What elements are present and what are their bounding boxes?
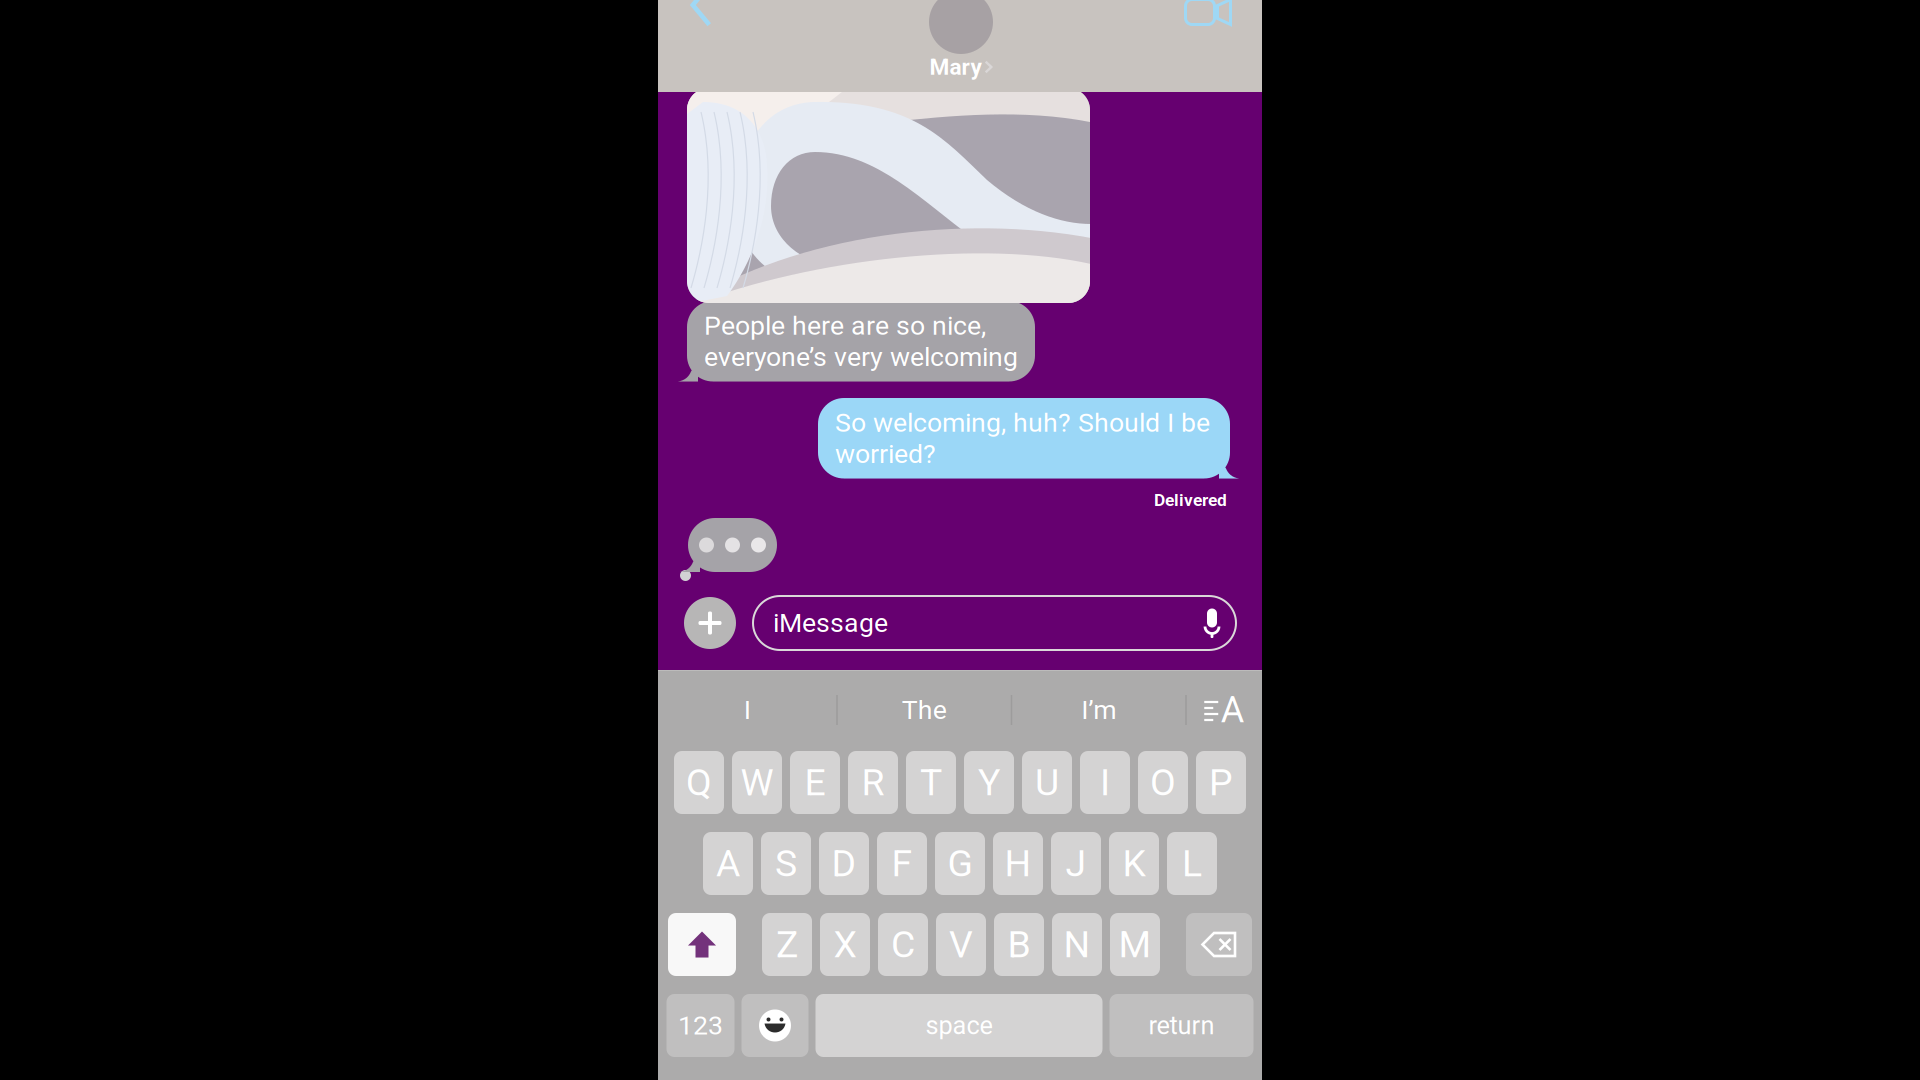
staticText: return (1148, 1011, 1214, 1040)
button[interactable]: O (1138, 751, 1188, 814)
button[interactable]: G (935, 832, 985, 895)
staticText: People here are so nice, everyone’s very… (704, 310, 1018, 372)
staticText: Y (978, 761, 1000, 804)
button[interactable]: J (1051, 832, 1101, 895)
staticText: E (804, 761, 825, 804)
staticText: So welcoming, huh? Should I be worried? (835, 407, 1210, 469)
button[interactable]: X (820, 913, 870, 976)
staticText: F (891, 842, 912, 885)
staticText: I (1100, 761, 1110, 804)
button[interactable]: V (936, 913, 986, 976)
staticText: H (1004, 842, 1031, 885)
button[interactable]: S (761, 832, 811, 895)
staticText: L (1182, 842, 1202, 885)
staticText: Q (686, 761, 712, 804)
staticText: N (1063, 923, 1090, 966)
button[interactable]: Text formatting (1187, 671, 1262, 749)
button[interactable]: Z (762, 913, 812, 976)
button[interactable]: A (703, 832, 753, 895)
button[interactable]: Mary (886, 0, 1036, 78)
button[interactable]: H (993, 832, 1043, 895)
button[interactable]: P (1196, 751, 1246, 814)
button[interactable]: space (815, 994, 1102, 1057)
staticText: T (920, 761, 942, 804)
staticText: Delivered (1154, 490, 1227, 510)
button[interactable]: I (1080, 751, 1130, 814)
button[interactable]: K (1109, 832, 1159, 895)
button[interactable]: C (878, 913, 928, 976)
staticText: K (1122, 842, 1145, 885)
staticText: S (775, 842, 797, 885)
button[interactable]: L (1167, 832, 1217, 895)
staticText: I’m (1081, 694, 1116, 726)
button[interactable]: FaceTime (1182, 0, 1238, 35)
button[interactable]: E (790, 751, 840, 814)
staticText: iMessage (773, 607, 888, 639)
button[interactable] (1186, 913, 1252, 976)
button[interactable]: The (838, 671, 1011, 749)
staticText: J (1065, 842, 1086, 885)
button[interactable]: iMessage (753, 596, 1236, 650)
staticText: P (1209, 761, 1233, 804)
staticText: O (1150, 761, 1176, 804)
button[interactable]: T (906, 751, 956, 814)
button[interactable]: I (658, 671, 836, 749)
button[interactable]: Y (964, 751, 1014, 814)
staticText: A (716, 842, 740, 885)
button[interactable]: U (1022, 751, 1072, 814)
staticText: 123 (678, 1010, 723, 1041)
button[interactable]: M (1110, 913, 1160, 976)
staticText: U (1035, 761, 1059, 804)
staticText: D (831, 842, 856, 885)
staticText: Z (776, 923, 798, 966)
button[interactable]: Q (674, 751, 724, 814)
button[interactable]: W (732, 751, 782, 814)
staticText: R (861, 761, 884, 804)
button[interactable]: I’m (1012, 671, 1185, 749)
staticText: The (902, 694, 947, 726)
staticText: space (925, 1011, 992, 1040)
button[interactable]: R (848, 751, 898, 814)
button[interactable] (668, 913, 736, 976)
staticText: B (1007, 923, 1030, 966)
staticText: A (1221, 689, 1244, 731)
button[interactable]: B (994, 913, 1044, 976)
staticText: X (833, 923, 856, 966)
button[interactable]: 123 (666, 994, 734, 1057)
staticText: C (891, 923, 915, 966)
button[interactable]: N (1052, 913, 1102, 976)
staticText: G (947, 842, 972, 885)
staticText: M (1118, 923, 1151, 966)
staticText: I (744, 694, 751, 726)
button[interactable]: D (819, 832, 869, 895)
staticText: Mary (929, 54, 981, 80)
button[interactable]: return (1109, 994, 1253, 1057)
staticText: W (740, 761, 773, 804)
button[interactable]: Back (678, 0, 724, 28)
button[interactable] (741, 994, 808, 1057)
button[interactable]: F (877, 832, 927, 895)
staticText: V (949, 923, 973, 966)
button[interactable]: Add attachment (684, 597, 736, 649)
